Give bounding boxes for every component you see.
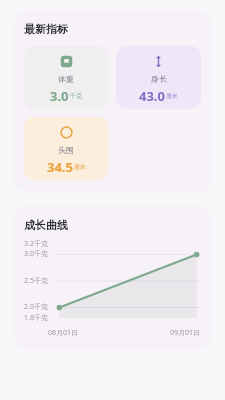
staticText: 34.5 bbox=[47, 158, 73, 172]
staticText: 身长 bbox=[151, 74, 167, 84]
button[interactable]: 3.2千克 bbox=[24, 238, 201, 338]
staticText: 最新指标 bbox=[24, 22, 68, 36]
button[interactable]: 身长图标 bbox=[116, 46, 201, 109]
other: 身长图标 bbox=[152, 55, 165, 68]
staticText: 厘米 bbox=[74, 163, 86, 171]
button[interactable]: 头围图标 bbox=[24, 117, 108, 180]
staticText: 3.0 bbox=[50, 87, 69, 101]
staticText: 成长曲线 bbox=[24, 218, 68, 232]
other: 体重图标 bbox=[60, 55, 73, 68]
staticText: 头围 bbox=[58, 145, 74, 155]
staticText: 1.8千克 bbox=[24, 313, 48, 323]
staticText: 2.0千克 bbox=[24, 302, 48, 312]
staticText: 09月01日 bbox=[170, 328, 201, 338]
button[interactable]: 体重图标 bbox=[24, 46, 108, 109]
staticText: 2.5千克 bbox=[24, 276, 48, 286]
staticText: 08月01日 bbox=[48, 328, 79, 338]
staticText: 千克 bbox=[70, 92, 82, 100]
staticText: 体重 bbox=[58, 74, 74, 84]
staticText: 3.0千克 bbox=[24, 249, 48, 259]
staticText: 厘米 bbox=[166, 92, 178, 100]
other: 头围图标 bbox=[60, 126, 73, 139]
staticText: 43.0 bbox=[139, 87, 165, 101]
staticText: 3.2千克 bbox=[24, 239, 48, 249]
